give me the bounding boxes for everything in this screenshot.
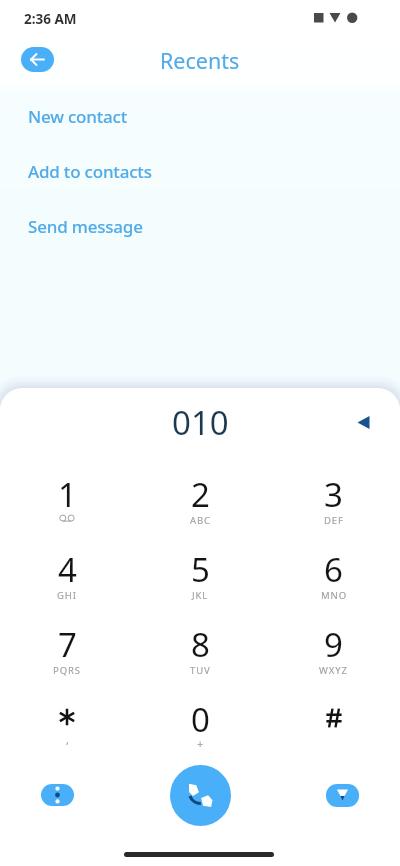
staticText: PQRS [53, 664, 81, 677]
staticText: ABC [190, 514, 211, 527]
staticText: 0 [191, 697, 210, 742]
staticText: 2 [191, 472, 210, 517]
button[interactable]: More options [41, 784, 74, 806]
staticText: Recents [160, 46, 240, 75]
staticText: + [197, 736, 204, 751]
staticText: 2:36 AM [24, 10, 77, 28]
button[interactable]: 0 [134, 691, 267, 766]
button[interactable]: Back [21, 47, 54, 72]
staticText: WXYZ [319, 664, 348, 677]
staticText: 5 [191, 547, 210, 592]
button[interactable]: , [0, 691, 134, 766]
button[interactable]: 8 [134, 616, 267, 691]
button[interactable]: Send message [0, 206, 400, 246]
button[interactable]: 4 [0, 541, 134, 616]
staticText: GHI [57, 589, 77, 602]
staticText: New contact [28, 105, 128, 128]
staticText: 9 [324, 622, 343, 667]
staticText: 4 [58, 547, 77, 592]
button[interactable]: Hide keypad [326, 784, 359, 807]
button[interactable]: 3 [267, 466, 400, 541]
button[interactable]: 2 [134, 466, 267, 541]
staticText: Send message [28, 215, 143, 238]
staticText: 010 [172, 400, 229, 445]
staticText: JKL [192, 589, 209, 602]
staticText: 7 [58, 622, 77, 667]
button[interactable]: Add to contacts [0, 151, 400, 191]
staticText: DEF [324, 514, 344, 527]
staticText: 6 [324, 547, 343, 592]
button[interactable]: 9 [267, 616, 400, 691]
staticText: 3 [324, 472, 343, 517]
staticText: 8 [191, 622, 210, 667]
staticText: 1 [58, 472, 77, 517]
button[interactable]: Call [170, 765, 231, 826]
staticText: TUV [190, 664, 211, 677]
button[interactable]: 6 [267, 541, 400, 616]
button[interactable]: 7 [0, 616, 134, 691]
button[interactable] [267, 691, 400, 766]
button[interactable]: Backspace [349, 404, 377, 432]
button[interactable]: 5 [134, 541, 267, 616]
staticText: Add to contacts [28, 160, 152, 183]
button[interactable]: 1 [0, 466, 134, 541]
staticText: , [66, 732, 69, 747]
button[interactable]: New contact [0, 96, 400, 136]
staticText: MNO [321, 589, 347, 602]
